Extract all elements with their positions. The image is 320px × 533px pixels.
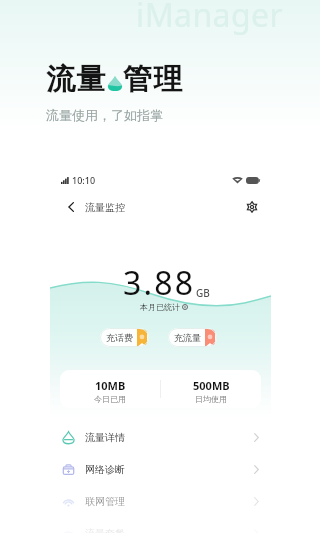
staticText: 流量 [46, 61, 107, 98]
staticText: 日均使用 [195, 394, 227, 404]
staticText: 流量套餐 [85, 527, 125, 533]
staticText: 10MB [95, 378, 126, 393]
button[interactable]: 充话费 [100, 328, 149, 347]
staticText: GB [196, 286, 210, 300]
staticText: 网络诊断 [85, 463, 125, 476]
staticText: 流量监控 [85, 201, 125, 214]
staticText: 3.88 [123, 261, 196, 305]
staticText: 充话费 [106, 332, 133, 343]
staticText: 500MB [193, 378, 230, 393]
staticText: 10:10 [72, 174, 96, 186]
staticText: iManager [136, 0, 284, 37]
button[interactable]: Back [64, 200, 78, 214]
button[interactable]: 流量详情 [50, 421, 271, 453]
staticText: 本月已统计 [140, 302, 180, 312]
staticText: 充流量 [174, 332, 201, 343]
button[interactable]: 充流量 [168, 328, 217, 347]
button[interactable]: 500MB [161, 376, 261, 402]
staticText: 今日已用 [94, 394, 126, 404]
staticText: 流量使用，了如指掌 [46, 107, 163, 123]
staticText: 流量详情 [85, 431, 125, 444]
button[interactable]: Settings [245, 200, 259, 214]
button[interactable]: 联网管理 [50, 485, 271, 517]
staticText: 管理 [123, 61, 184, 98]
staticText: 联网管理 [85, 495, 125, 508]
button[interactable]: 网络诊断 [50, 453, 271, 485]
button[interactable]: 10MB [60, 376, 160, 402]
